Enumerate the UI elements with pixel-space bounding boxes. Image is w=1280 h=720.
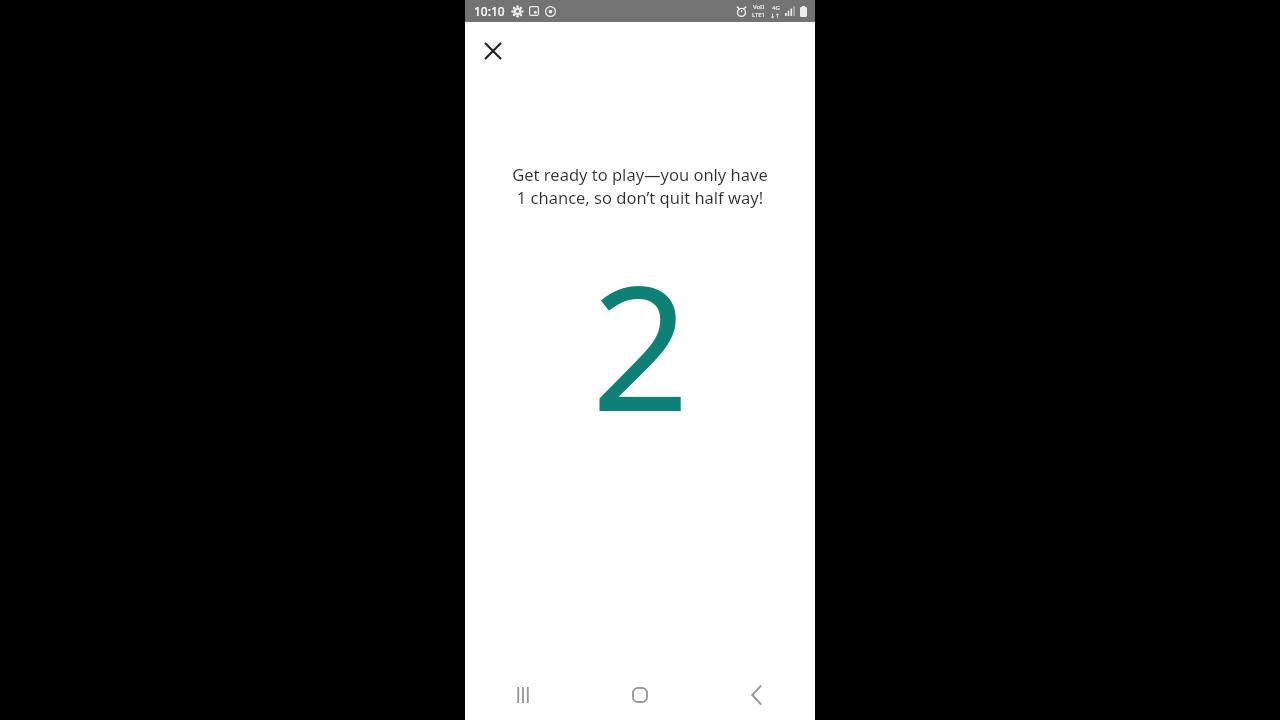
staticText: LTE1 <box>752 11 766 19</box>
button[interactable]: Close <box>471 29 515 73</box>
staticText: 10:10 <box>474 3 505 19</box>
staticText: ↓↑ <box>770 12 781 19</box>
button[interactable]: Home <box>581 670 698 720</box>
button[interactable]: Back <box>698 670 815 720</box>
staticText: VoII <box>753 3 765 11</box>
staticText: 4G <box>772 4 780 12</box>
staticText: Get ready to play—you only have 1 chance… <box>506 163 774 209</box>
button[interactable]: Recent apps <box>465 670 581 720</box>
staticText: 2 <box>591 227 690 417</box>
